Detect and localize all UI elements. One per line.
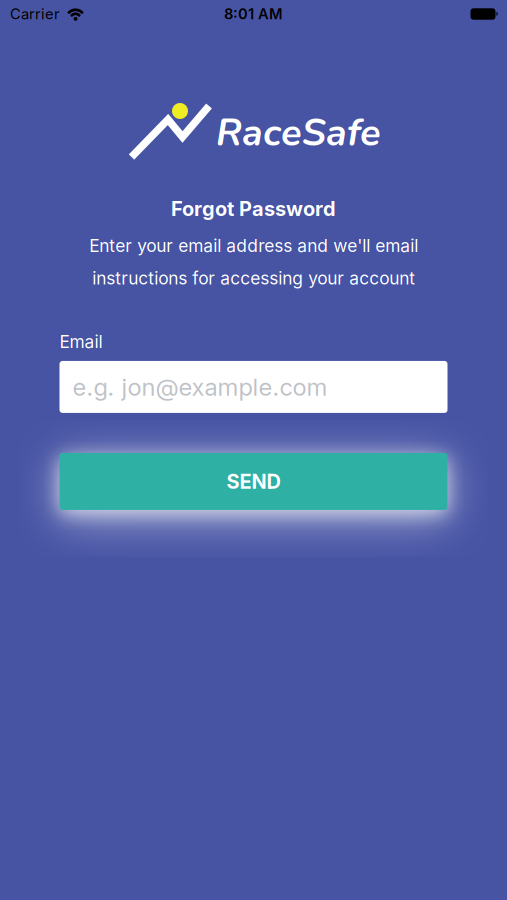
staticText: Forgot Password <box>171 197 336 221</box>
staticText: e.g. jon@example.com <box>72 373 327 401</box>
staticText: 8:01 AM <box>224 5 283 23</box>
staticText: Carrier <box>10 5 60 23</box>
button[interactable]: SEND <box>59 453 447 510</box>
staticText: Email <box>59 331 102 352</box>
staticText: Enter your email address and we'll email… <box>89 236 418 288</box>
staticText: SEND <box>226 470 280 493</box>
button[interactable]: Email <box>59 361 447 413</box>
staticText: RaceSafe <box>216 107 381 159</box>
